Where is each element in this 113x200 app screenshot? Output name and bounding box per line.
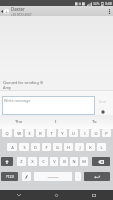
button[interactable]: M — [80, 157, 88, 166]
staticText: O — [94, 131, 98, 136]
button[interactable]: 123 — [1, 172, 18, 181]
staticText: Write message — [4, 98, 31, 103]
staticText: E — [28, 131, 31, 136]
button[interactable]: Write message — [2, 96, 95, 115]
button[interactable]: The — [0, 115, 37, 129]
staticText: N — [72, 159, 76, 164]
button[interactable]: B — [60, 157, 68, 166]
button[interactable]: W — [14, 129, 23, 137]
button[interactable]: L — [97, 143, 106, 151]
button[interactable]: U — [69, 129, 78, 137]
staticText: D — [34, 145, 37, 150]
staticText: U — [72, 131, 75, 136]
staticText: R — [39, 131, 42, 136]
staticText: W — [17, 131, 21, 136]
button[interactable]: . — [75, 172, 81, 181]
staticText: . — [77, 174, 79, 179]
staticText: S — [23, 145, 26, 150]
staticText: I — [55, 119, 57, 125]
button[interactable]: C — [39, 157, 48, 166]
button[interactable]: A — [7, 143, 17, 151]
staticText: Dexter — [11, 6, 25, 12]
button[interactable]: T — [47, 129, 56, 137]
button[interactable]: Voice input — [22, 172, 31, 181]
button[interactable]: Space — [34, 172, 72, 181]
staticText: +65 8123 4567 — [11, 13, 32, 16]
staticText: A — [11, 145, 14, 150]
button[interactable]: Back — [0, 6, 4, 16]
staticText: Q — [5, 131, 9, 136]
staticText: 3:38 — [105, 1, 112, 6]
staticText: V — [53, 159, 56, 164]
button[interactable]: Y — [58, 129, 67, 137]
staticText: X — [31, 159, 34, 164]
button[interactable]: I — [80, 129, 89, 137]
staticText: F — [45, 145, 48, 150]
button[interactable]: To — [75, 115, 113, 129]
button[interactable]: enter — [84, 172, 110, 181]
staticText: Y — [61, 131, 64, 136]
button[interactable]: shift — [1, 157, 13, 166]
button[interactable]: D — [31, 143, 40, 151]
button[interactable]: Z — [17, 157, 26, 166]
button[interactable]: E — [25, 129, 34, 137]
button[interactable]: K — [86, 143, 95, 151]
staticText: P — [105, 131, 108, 136]
button[interactable]: H — [64, 143, 73, 151]
button[interactable]: Recent apps — [75, 190, 113, 200]
button[interactable]: F — [42, 143, 51, 151]
button[interactable]: O — [91, 129, 100, 137]
staticText: Queued for sending — [3, 80, 39, 85]
staticText: L — [100, 145, 103, 150]
staticText: Send — [99, 100, 106, 104]
button[interactable]: G — [53, 143, 62, 151]
button[interactable]: J — [75, 143, 84, 151]
button[interactable]: I — [37, 115, 75, 129]
button[interactable]: V — [50, 157, 58, 166]
staticText: T — [50, 131, 53, 136]
staticText: Amy — [3, 85, 11, 90]
button[interactable]: Back — [0, 190, 37, 200]
button[interactable]: P — [102, 129, 111, 137]
button[interactable]: N — [70, 157, 78, 166]
staticText: J — [79, 145, 81, 150]
staticText: M — [82, 159, 86, 164]
staticText: To — [92, 119, 97, 125]
staticText: I — [84, 131, 86, 136]
staticText: Z — [20, 159, 23, 164]
staticText: G — [56, 145, 59, 150]
button[interactable]: X — [28, 157, 37, 166]
button[interactable]: R — [36, 129, 45, 137]
staticText: B — [63, 159, 66, 164]
button[interactable]: Home — [37, 190, 75, 200]
staticText: ?123 — [6, 174, 14, 179]
staticText: K — [89, 145, 92, 150]
button[interactable]: Send — [98, 107, 107, 116]
button[interactable]: More options — [105, 6, 113, 16]
staticText: 34% — [93, 2, 100, 6]
staticText: H — [67, 145, 70, 150]
button[interactable]: Q — [2, 129, 12, 137]
button[interactable]: S — [19, 143, 29, 151]
staticText: C — [42, 159, 45, 164]
staticText: The — [15, 119, 23, 125]
button[interactable]: del — [92, 157, 110, 166]
